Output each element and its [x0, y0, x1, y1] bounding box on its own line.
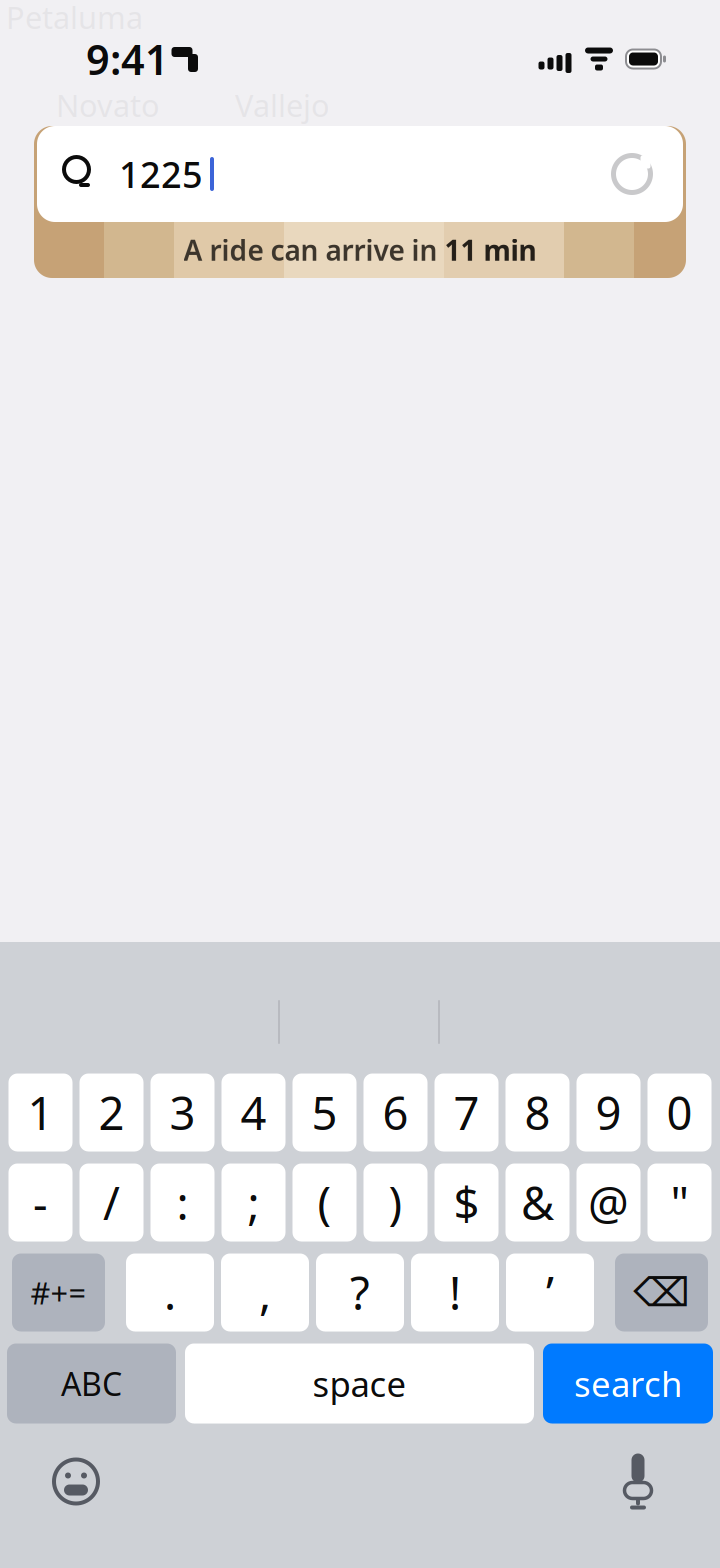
- staticText: 9:41: [86, 32, 169, 86]
- button[interactable]: Emoji keyboard: [38, 1443, 114, 1519]
- button[interactable]: 3: [150, 1073, 214, 1151]
- staticText: search: [574, 1360, 682, 1406]
- button[interactable]: $: [434, 1163, 498, 1241]
- button[interactable]: Delete: [615, 1253, 708, 1331]
- button[interactable]: (: [292, 1163, 356, 1241]
- button[interactable]: !: [411, 1253, 499, 1331]
- staticText: Novato: [56, 85, 160, 125]
- staticText: space: [312, 1360, 406, 1406]
- staticText: :: [176, 1172, 188, 1233]
- staticText: A ride can arrive in: [183, 231, 444, 269]
- button[interactable]: ,: [221, 1253, 309, 1331]
- button[interactable]: 9: [576, 1073, 640, 1151]
- staticText: .: [164, 1262, 176, 1323]
- button[interactable]: ): [363, 1163, 427, 1241]
- button[interactable]: :: [150, 1163, 214, 1241]
- staticText: &: [521, 1172, 554, 1233]
- staticText: 1: [27, 1082, 53, 1143]
- staticText: -: [33, 1172, 48, 1233]
- button[interactable]: 4: [221, 1073, 285, 1151]
- staticText: 8: [524, 1082, 550, 1143]
- button[interactable]: ’: [506, 1253, 594, 1331]
- button[interactable]: .: [126, 1253, 214, 1331]
- staticText: ;: [247, 1172, 259, 1233]
- button[interactable]: Dictation: [600, 1443, 676, 1519]
- staticText: 3: [169, 1082, 195, 1143]
- staticText: 2: [98, 1082, 124, 1143]
- staticText: 0: [666, 1082, 692, 1143]
- staticText: ,: [259, 1262, 271, 1323]
- button[interactable]: 2: [79, 1073, 143, 1151]
- button[interactable]: ?: [316, 1253, 404, 1331]
- button[interactable]: 7: [434, 1073, 498, 1151]
- staticText: 4: [240, 1082, 266, 1143]
- staticText: !: [449, 1262, 461, 1323]
- button[interactable]: 0: [647, 1073, 711, 1151]
- button[interactable]: -: [8, 1163, 72, 1241]
- button[interactable]: /: [79, 1163, 143, 1241]
- button[interactable]: search: [543, 1343, 713, 1423]
- staticText: 9: [595, 1082, 621, 1143]
- staticText: 6: [382, 1082, 408, 1143]
- button[interactable]: &: [505, 1163, 569, 1241]
- staticText: Petaluma: [6, 0, 143, 37]
- button[interactable]: #+=: [12, 1253, 105, 1331]
- staticText: /: [103, 1172, 120, 1233]
- button[interactable]: 6: [363, 1073, 427, 1151]
- button[interactable]: @: [576, 1163, 640, 1241]
- staticText: 11 min: [444, 231, 536, 269]
- staticText: 1225: [119, 150, 203, 198]
- staticText: ⌫: [633, 1270, 690, 1315]
- button[interactable]: 8: [505, 1073, 569, 1151]
- staticText: ): [388, 1172, 402, 1233]
- staticText: $: [453, 1172, 479, 1233]
- staticText: #+=: [30, 1272, 86, 1313]
- button[interactable]: ": [647, 1163, 711, 1241]
- staticText: ABC: [61, 1362, 122, 1405]
- button[interactable]: ;: [221, 1163, 285, 1241]
- staticText: ’: [546, 1262, 554, 1323]
- staticText: 7: [453, 1082, 479, 1143]
- staticText: ?: [350, 1262, 370, 1323]
- staticText: 5: [311, 1082, 337, 1143]
- button[interactable]: ABC: [7, 1343, 176, 1423]
- staticText: Vallejo: [235, 85, 330, 125]
- button[interactable]: 1: [8, 1073, 72, 1151]
- button[interactable]: space: [185, 1343, 534, 1423]
- button[interactable]: 1225: [37, 126, 683, 222]
- staticText: ": [670, 1172, 688, 1233]
- button[interactable]: 5: [292, 1073, 356, 1151]
- staticText: @: [588, 1172, 629, 1233]
- staticText: (: [317, 1172, 331, 1233]
